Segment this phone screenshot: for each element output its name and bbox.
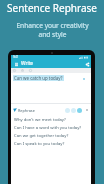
button[interactable]: Format option	[20, 68, 25, 73]
button[interactable]: Why don't we meet today?	[11, 116, 91, 124]
staticText: Can we get together today?	[14, 133, 69, 139]
staticText: Can I speak to you today?	[14, 141, 65, 147]
button[interactable]: Can I have a word with you today?	[11, 124, 91, 132]
staticText: Sentence Rephrase	[7, 1, 97, 15]
staticText: 9:41	[13, 55, 19, 59]
button[interactable]: Close	[85, 108, 89, 112]
button[interactable]: Format option	[12, 68, 17, 73]
staticText: Rephrase	[18, 108, 35, 113]
staticText: Write	[21, 60, 34, 67]
button[interactable]: Tone option	[77, 108, 82, 113]
button[interactable]: Can I speak to you today?	[11, 140, 91, 148]
button[interactable]: Can we get together today?	[11, 132, 91, 140]
button[interactable]: Tone option	[71, 108, 76, 113]
staticText: Can I have a word with you today?	[14, 125, 82, 131]
button[interactable]: Tone option	[65, 108, 70, 113]
button[interactable]: Share	[84, 61, 90, 67]
button[interactable]: Format option	[28, 68, 33, 73]
staticText: Enhance your creativity and style	[16, 21, 89, 39]
staticText: Why don't we meet today?	[14, 117, 66, 123]
button[interactable]: Menu	[13, 61, 19, 67]
staticText: Can we catch up today?	[14, 75, 63, 81]
